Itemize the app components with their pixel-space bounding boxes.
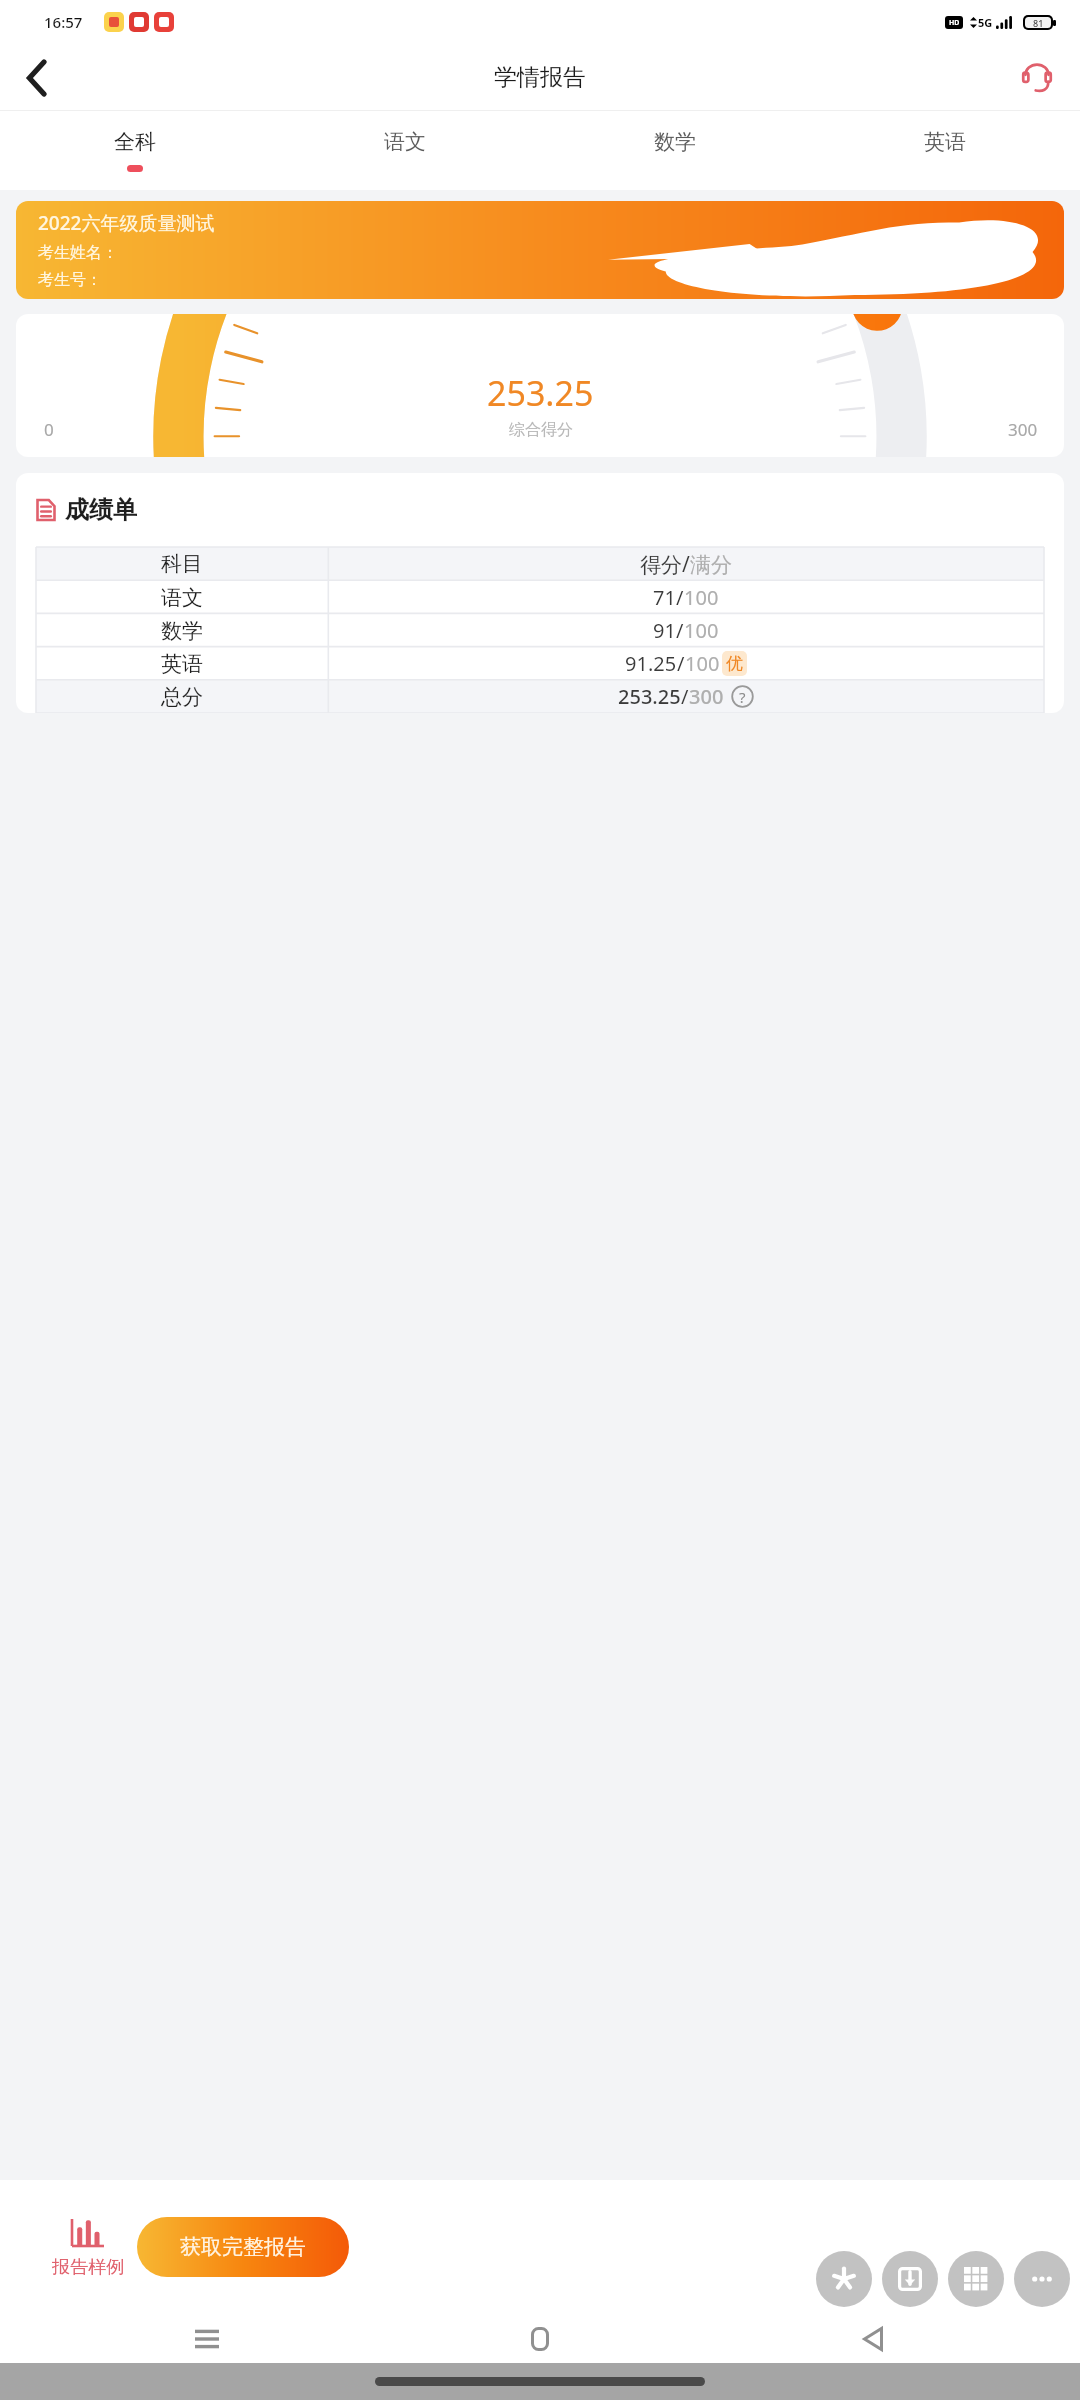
button[interactable]: 获取完整报告	[137, 2217, 349, 2277]
button[interactable]: 语文	[270, 111, 540, 190]
button[interactable]: Download	[882, 2251, 938, 2307]
staticText: 英语	[161, 651, 203, 677]
button[interactable]: Back	[8, 49, 66, 107]
button[interactable]: 全科	[0, 111, 270, 190]
staticText: 英语	[924, 129, 966, 155]
staticText: /	[681, 683, 689, 710]
staticText: 学情报告	[494, 63, 586, 92]
staticText: 满分	[690, 552, 732, 578]
staticText: /	[682, 550, 690, 579]
button[interactable]: Home	[510, 2317, 570, 2361]
staticText: 91.25	[625, 650, 677, 677]
staticText: /	[676, 617, 684, 644]
button[interactable]: Refresh	[816, 2251, 872, 2307]
staticText: 获取完整报告	[180, 2234, 306, 2260]
staticText: 语文	[384, 129, 426, 155]
staticText: 综合得分	[509, 420, 573, 440]
staticText: 优	[726, 653, 743, 674]
staticText: 考生姓名：	[38, 243, 118, 263]
button[interactable]: Info	[731, 685, 754, 708]
staticText: 全科	[114, 129, 156, 155]
button[interactable]: Apps	[948, 2251, 1004, 2307]
button[interactable]: More	[1014, 2251, 1070, 2307]
staticText: 报告样例	[52, 2256, 124, 2279]
staticText: 300	[1008, 418, 1038, 441]
staticText: 考生号：	[38, 270, 102, 290]
staticText: 0	[44, 418, 54, 441]
button[interactable]: 英语	[810, 111, 1080, 190]
button[interactable]: Recents	[177, 2317, 237, 2361]
staticText: ?	[739, 687, 746, 707]
staticText: 得分	[640, 552, 682, 578]
staticText: 100	[685, 650, 720, 677]
staticText: /	[677, 650, 685, 677]
staticText: 253.25	[487, 370, 594, 416]
staticText: 253.25	[618, 683, 681, 710]
staticText: 数学	[161, 618, 203, 644]
staticText: 81	[1033, 17, 1044, 28]
staticText: 100	[684, 617, 719, 644]
button[interactable]: 2022六年级质量测试	[16, 201, 1064, 299]
staticText: 100	[684, 584, 719, 611]
button[interactable]: 报告样例	[52, 2217, 124, 2279]
staticText: 91	[653, 617, 676, 644]
staticText: 16:57	[44, 12, 83, 32]
staticText: 71	[653, 584, 676, 611]
staticText: 300	[689, 683, 724, 710]
staticText: 成绩单	[65, 495, 137, 525]
staticText: 5G	[978, 15, 993, 30]
button[interactable]: 数学	[540, 111, 810, 190]
staticText: 科目	[161, 551, 203, 577]
button[interactable]: Back	[843, 2317, 903, 2361]
staticText: 数学	[654, 129, 696, 155]
staticText: 2022六年级质量测试	[38, 210, 215, 236]
staticText: HD	[949, 18, 960, 28]
staticText: 总分	[161, 684, 203, 710]
staticText: 语文	[161, 585, 203, 611]
staticText: /	[676, 584, 684, 611]
button[interactable]: Customer service	[1010, 51, 1064, 105]
